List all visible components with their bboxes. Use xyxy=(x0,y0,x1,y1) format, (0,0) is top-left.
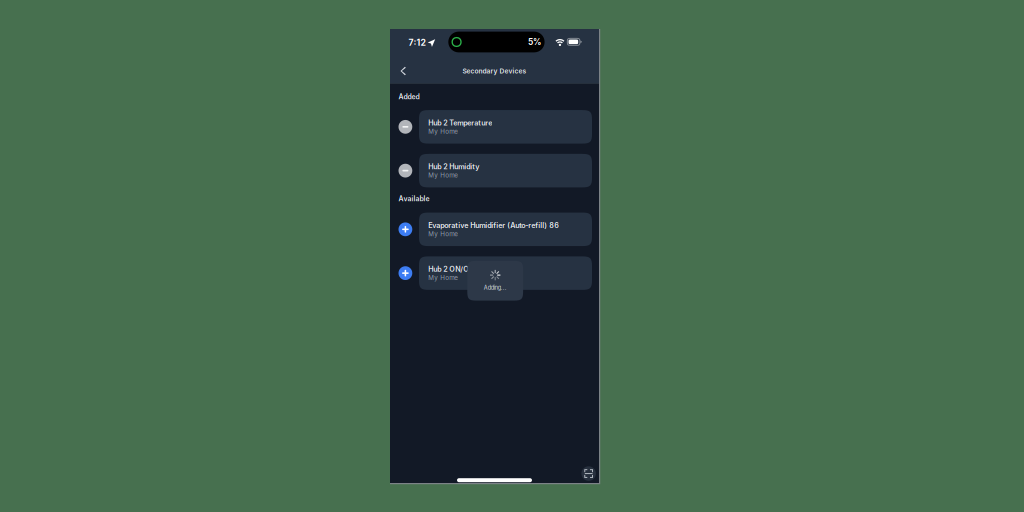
button[interactable]: Hub 2 ON/OFF xyxy=(390,256,599,290)
staticText: My Home xyxy=(428,171,458,179)
button[interactable]: Hub 2 Humidity xyxy=(390,154,599,187)
staticText: My Home xyxy=(428,128,458,135)
staticText: Adding... xyxy=(484,284,507,291)
button[interactable]: Hub 2 Temperature xyxy=(390,110,599,144)
staticText: 7:12 xyxy=(408,37,425,48)
staticText: 5% xyxy=(528,37,541,47)
staticText: Hub 2 Temperature xyxy=(428,118,492,127)
staticText: My Home xyxy=(428,274,458,281)
staticText: Hub 2 Humidity xyxy=(428,162,479,171)
staticText: Available xyxy=(398,195,429,203)
button[interactable]: Evaporative Humidifier (Auto-refill) 86 xyxy=(390,213,599,246)
button[interactable]: Back xyxy=(390,61,415,81)
staticText: Hub 2 ON/OFF xyxy=(428,265,477,273)
button[interactable]: Scan xyxy=(581,466,596,481)
staticText: Added xyxy=(398,92,419,101)
staticText: My Home xyxy=(428,230,458,238)
staticText: Secondary Devices xyxy=(462,67,526,75)
staticText: Evaporative Humidifier (Auto-refill) 86 xyxy=(428,221,559,230)
